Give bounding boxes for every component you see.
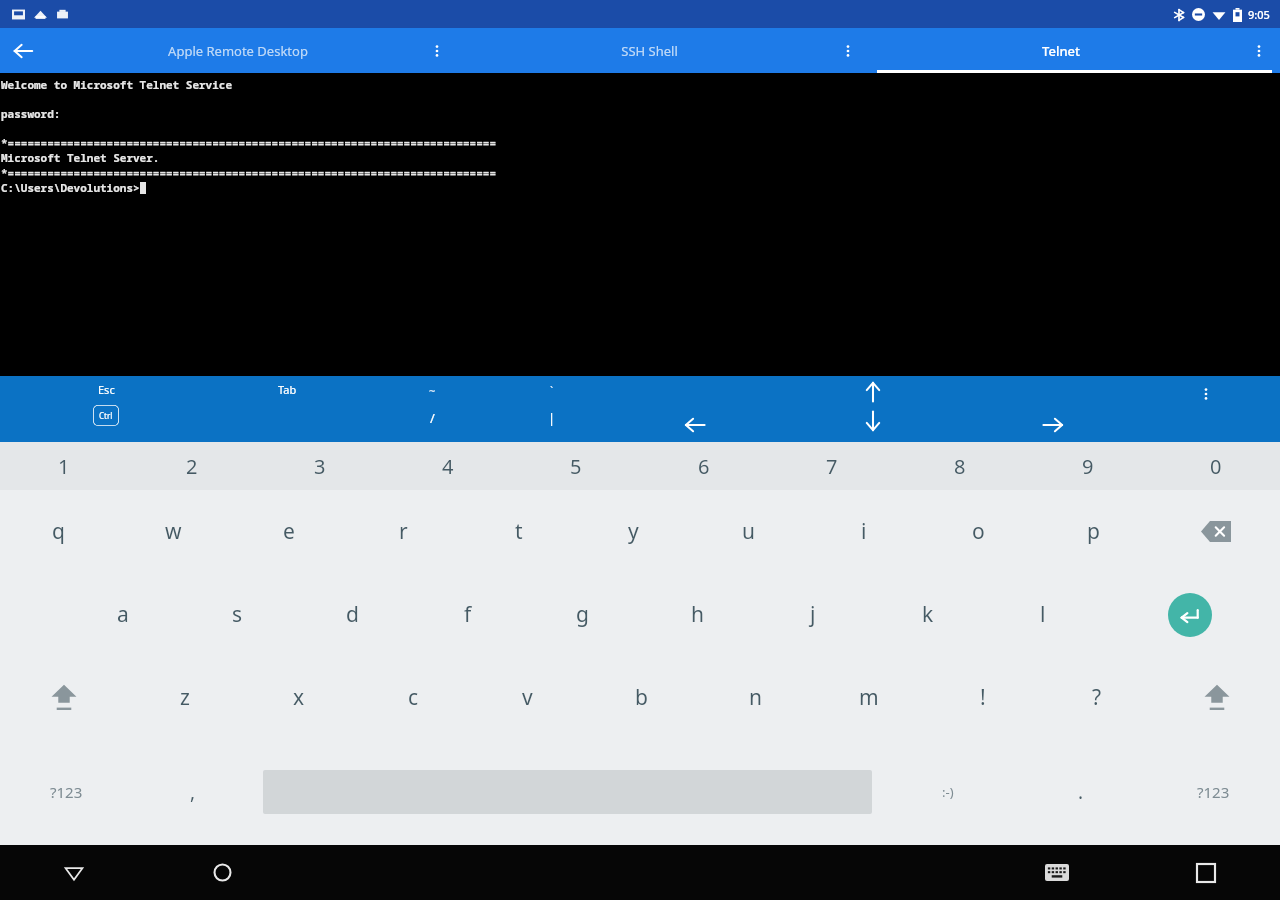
button[interactable]: More options <box>835 38 861 64</box>
button[interactable]: Shift <box>1154 656 1280 739</box>
button[interactable]: 1 <box>0 442 128 490</box>
staticText: :-) <box>942 783 954 801</box>
button[interactable]: Space <box>253 739 881 845</box>
staticText: 8 <box>954 453 966 480</box>
button[interactable]: z <box>127 656 242 739</box>
staticText: 2 <box>186 453 198 480</box>
button[interactable]: j <box>755 573 870 656</box>
button[interactable]: ` <box>532 383 572 427</box>
button[interactable]: Up and Down <box>861 380 885 433</box>
button[interactable]: 4 <box>384 442 512 490</box>
button[interactable]: Enter <box>1100 573 1280 656</box>
button[interactable]: Apple Remote Desktop <box>46 28 458 73</box>
button[interactable]: ?123 <box>1147 739 1280 845</box>
staticText: Esc <box>98 382 115 397</box>
staticText: / <box>430 409 435 427</box>
staticText: t <box>515 517 523 546</box>
button[interactable]: l <box>985 573 1100 656</box>
staticText: 7 <box>826 453 838 480</box>
button[interactable]: i <box>806 490 921 573</box>
button[interactable]: More keys <box>1192 380 1220 408</box>
staticText: 4 <box>442 453 454 480</box>
staticText: . <box>1078 779 1084 805</box>
button[interactable]: 0 <box>1152 442 1280 490</box>
button[interactable]: 2 <box>128 442 256 490</box>
button[interactable]: e <box>231 490 346 573</box>
button[interactable]: Recent apps <box>1131 845 1280 900</box>
staticText: i <box>861 517 867 546</box>
staticText: ?123 <box>50 782 83 802</box>
staticText: 5 <box>570 453 582 480</box>
button[interactable]: Home <box>148 845 297 900</box>
staticText: z <box>180 683 190 712</box>
button[interactable]: b <box>584 656 698 739</box>
button[interactable]: 5 <box>512 442 640 490</box>
button[interactable]: Back <box>0 28 46 73</box>
button[interactable]: More options <box>1246 38 1272 64</box>
button[interactable]: w <box>116 490 231 573</box>
button[interactable]: Shift <box>0 656 127 739</box>
staticText: 3 <box>314 453 326 480</box>
button[interactable]: SSH Shell <box>458 28 869 73</box>
button[interactable]: :-) <box>881 739 1014 845</box>
button[interactable]: More options <box>424 38 450 64</box>
button[interactable]: c <box>356 656 470 739</box>
button[interactable]: Left <box>680 410 710 440</box>
staticText: j <box>810 600 816 629</box>
staticText: Telnet <box>1042 42 1080 60</box>
button[interactable]: p <box>1036 490 1151 573</box>
staticText: ! <box>980 683 986 712</box>
button[interactable]: ! <box>926 656 1040 739</box>
staticText: 1 <box>58 453 70 480</box>
button[interactable]: t <box>461 490 576 573</box>
button[interactable]: n <box>698 656 812 739</box>
staticText: w <box>165 517 182 546</box>
staticText: a <box>117 600 129 629</box>
staticText: 6 <box>698 453 710 480</box>
staticText: e <box>283 517 295 546</box>
staticText: Welcome to Microsoft Telnet Service <box>1 77 232 92</box>
button[interactable]: Tab <box>262 382 312 404</box>
button[interactable]: o <box>921 490 1036 573</box>
button[interactable]: d <box>295 573 410 656</box>
button[interactable]: Right <box>1038 410 1068 440</box>
button[interactable]: a <box>65 573 180 656</box>
button[interactable]: 3 <box>256 442 384 490</box>
button[interactable]: ?123 <box>0 739 132 845</box>
button[interactable]: h <box>640 573 755 656</box>
staticText: Apple Remote Desktop <box>168 42 308 60</box>
staticText: r <box>399 517 408 546</box>
button[interactable]: Back <box>0 845 148 900</box>
button[interactable]: x <box>242 656 356 739</box>
staticText: p <box>1087 517 1100 546</box>
button[interactable]: Backspace <box>1151 490 1280 573</box>
button[interactable]: ~ <box>412 383 452 427</box>
button[interactable]: y <box>576 490 691 573</box>
staticText: x <box>293 683 305 712</box>
button[interactable]: r <box>346 490 461 573</box>
staticText: password: <box>1 106 61 121</box>
staticText: m <box>859 683 879 712</box>
button[interactable]: Telnet <box>869 28 1280 73</box>
button[interactable]: f <box>410 573 525 656</box>
staticText: *=======================================… <box>1 165 496 180</box>
button[interactable]: s <box>180 573 295 656</box>
button[interactable]: k <box>870 573 985 656</box>
button[interactable]: 9 <box>1024 442 1152 490</box>
button[interactable]: Switch keyboard <box>982 845 1131 900</box>
button[interactable]: m <box>812 656 926 739</box>
button[interactable]: , <box>132 739 253 845</box>
button[interactable]: ? <box>1040 656 1154 739</box>
button[interactable]: 7 <box>768 442 896 490</box>
button[interactable]: 6 <box>640 442 768 490</box>
button[interactable]: v <box>470 656 584 739</box>
button[interactable]: 8 <box>896 442 1024 490</box>
staticText: Tab <box>278 382 297 397</box>
button[interactable]: g <box>525 573 640 656</box>
button[interactable]: Esc <box>78 382 134 426</box>
button[interactable]: u <box>691 490 806 573</box>
button[interactable]: q <box>0 490 116 573</box>
staticText: h <box>691 600 704 629</box>
staticText: l <box>1040 600 1046 629</box>
